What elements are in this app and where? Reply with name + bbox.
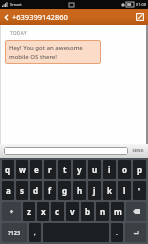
button[interactable]: k [103,181,116,200]
staticText: a [6,185,11,196]
staticText: d [33,185,39,196]
button[interactable]: x [37,202,49,221]
staticText: SEND [132,148,144,154]
staticText: s [20,185,25,196]
button[interactable]: p [133,160,146,179]
button[interactable]: o [118,160,131,179]
staticText: z [27,206,31,217]
button[interactable]: Shift [2,202,21,221]
staticText: TODAY [10,30,28,36]
staticText: Smart [10,2,22,8]
staticText: p [137,164,143,175]
staticText: j [93,185,96,196]
staticText: . [116,229,118,237]
button[interactable]: c [51,202,64,221]
button[interactable]: m [111,202,124,221]
button[interactable]: Backspace [126,202,146,221]
staticText: u [92,164,98,175]
staticText: , [34,229,36,237]
button[interactable]: j [88,181,101,200]
staticText: +639399142860 [12,12,132,22]
button[interactable]: , [29,223,41,242]
staticText: w [19,164,26,175]
button[interactable]: SEND [130,147,146,155]
staticText: v [70,206,75,217]
staticText: e [34,164,39,175]
button[interactable]: i [103,160,116,179]
staticText: o [122,164,127,175]
button[interactable]: v [66,202,79,221]
button[interactable]: . [111,223,123,242]
staticText: h [77,185,83,196]
staticText: i [108,164,111,175]
staticText: ' [138,185,141,196]
button[interactable]: y [73,160,86,179]
button[interactable]: ' [133,181,146,200]
staticText: x [41,206,46,217]
staticText: r [48,164,52,175]
button[interactable]: w [16,160,28,179]
staticText: t [63,164,67,175]
button[interactable]: e [30,160,42,179]
button[interactable]: b [81,202,94,221]
button[interactable]: Message input [4,147,128,155]
button[interactable]: t [58,160,71,179]
button[interactable]: d [30,181,42,200]
staticText: n [100,206,106,217]
staticText: b [85,206,91,217]
button[interactable]: Enter [125,223,146,242]
button[interactable]: Back [0,9,12,25]
staticText: q [5,164,11,175]
button[interactable]: a [2,181,14,200]
button[interactable]: Hey! You got an awesome mobile OS there! [5,40,101,64]
staticText: m [114,206,122,217]
button[interactable]: New message [132,9,148,25]
button[interactable]: ?123 [2,223,27,242]
staticText: ?123 [8,229,21,236]
button[interactable]: u [88,160,101,179]
staticText: f [48,185,52,196]
staticText: y [77,164,82,175]
button[interactable]: q [2,160,14,179]
button[interactable]: f [44,181,56,200]
staticText: g [62,185,68,196]
staticText: 01:08 [136,2,146,7]
button[interactable]: r [44,160,56,179]
staticText: Hey! You got an awesome mobile OS there! [9,44,97,60]
staticText: c [55,206,60,217]
button[interactable]: l [118,181,131,200]
button[interactable]: g [58,181,71,200]
button[interactable]: h [73,181,86,200]
button[interactable]: s [16,181,28,200]
button[interactable]: z [23,202,35,221]
button[interactable]: n [96,202,109,221]
staticText: k [107,185,112,196]
staticText: l [123,185,126,196]
